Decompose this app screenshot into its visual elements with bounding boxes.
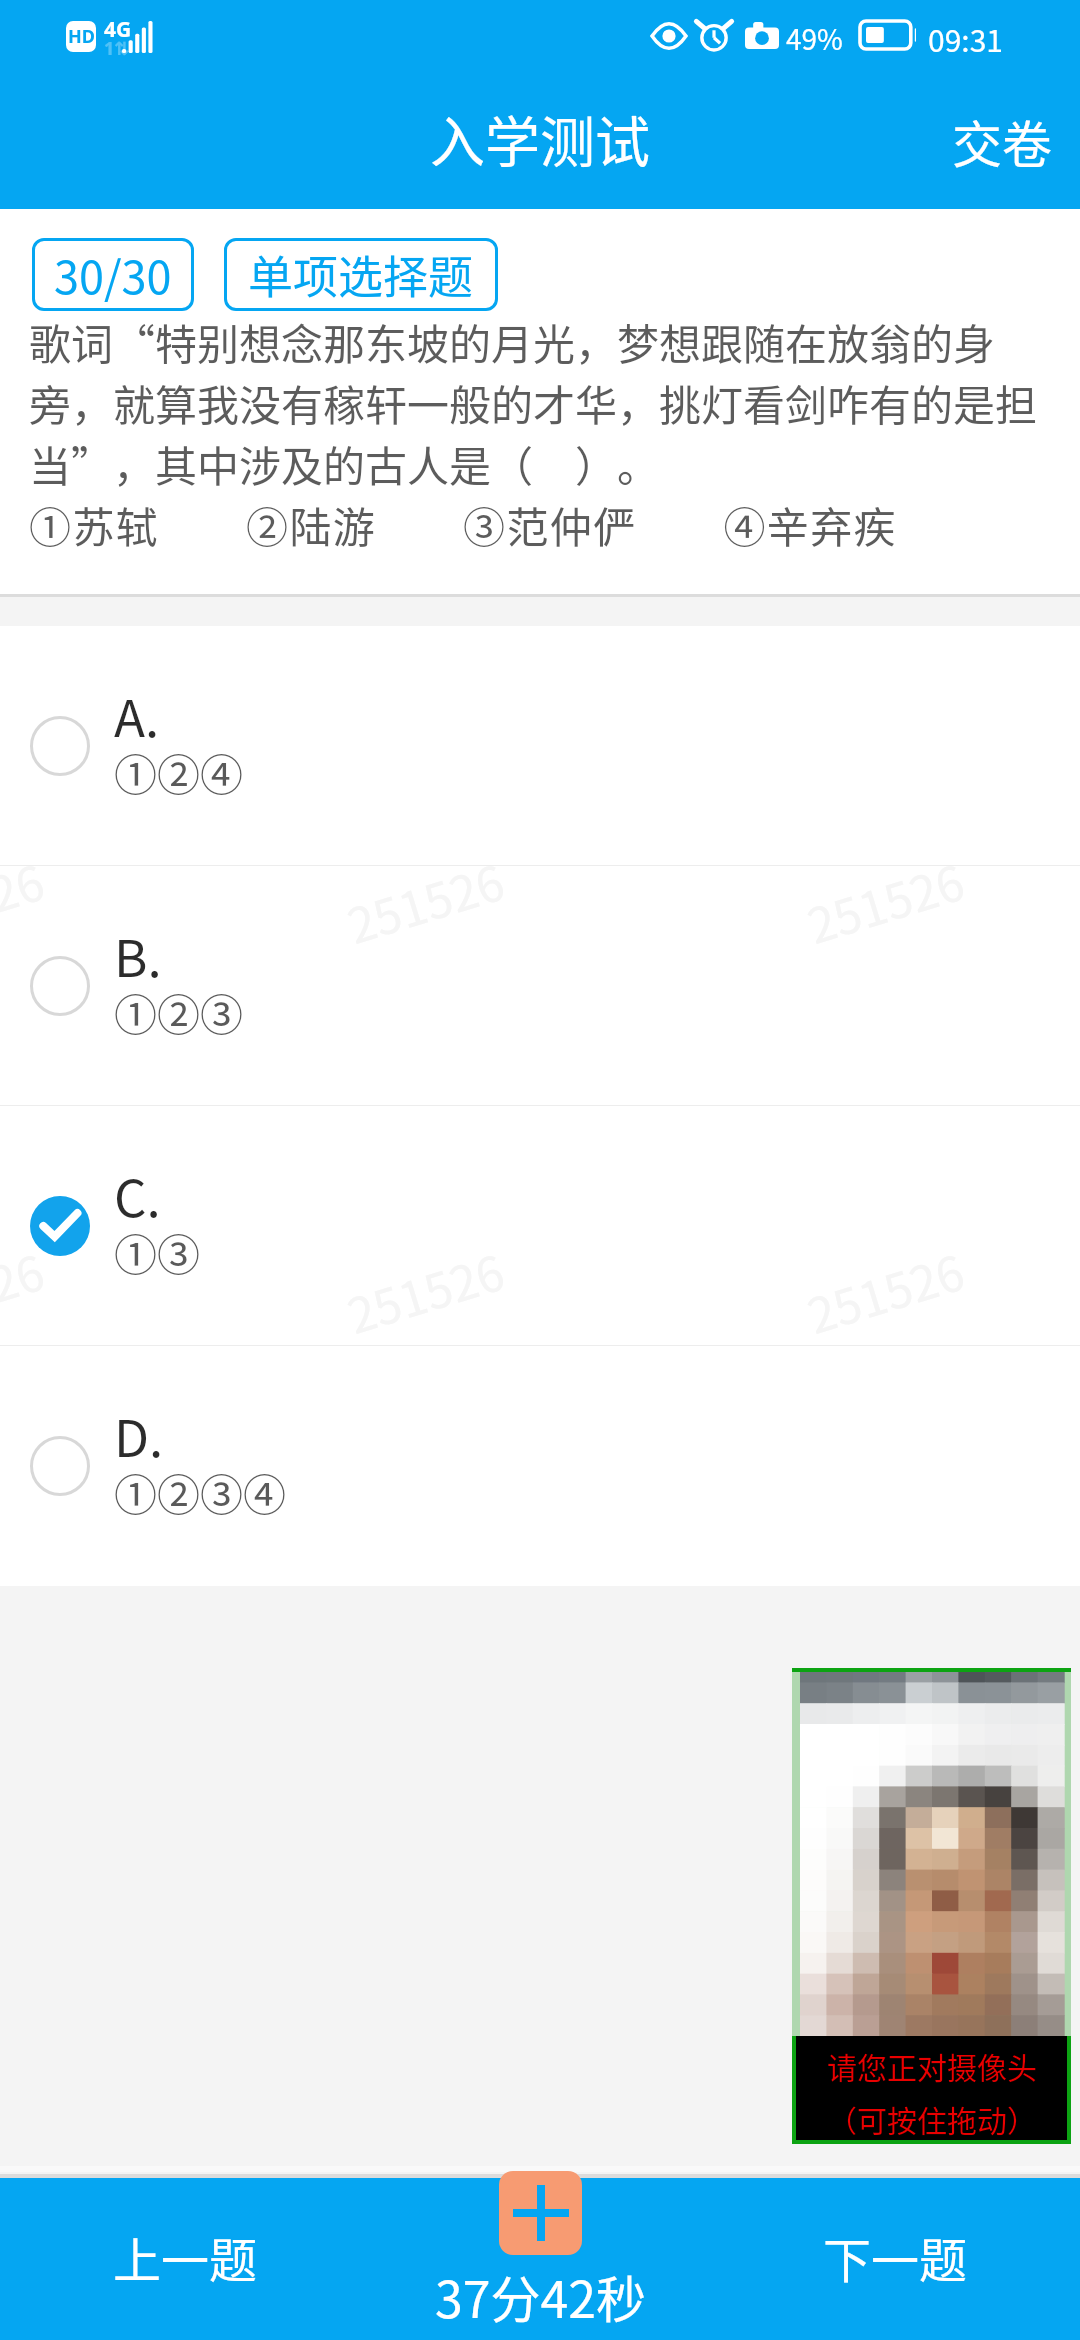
staticText: 251526	[338, 1234, 512, 1348]
staticText: 09:31	[928, 17, 1003, 60]
staticText: 下一题	[823, 2222, 968, 2292]
staticText: A.	[114, 678, 160, 752]
staticText: 请您正对摄像头	[827, 2044, 1037, 2087]
staticText: 49%	[786, 18, 843, 59]
staticText: 37分42秒	[435, 2260, 646, 2332]
button[interactable]: B.	[0, 866, 1080, 1105]
staticText: ①②③	[114, 981, 243, 1043]
staticText: C.	[114, 1158, 161, 1232]
staticText: 251526	[338, 844, 512, 958]
staticText: ①③	[114, 1221, 200, 1283]
button[interactable]: Add note	[499, 2171, 582, 2255]
button[interactable]: C.	[0, 1106, 1080, 1345]
staticText: 251526	[0, 1234, 52, 1348]
staticText: ①②③④	[114, 1461, 286, 1523]
staticText: 251526	[798, 844, 972, 958]
staticText: （可按住拖动）	[827, 2097, 1037, 2140]
button[interactable]: A.	[0, 626, 1080, 865]
button[interactable]: 上一题	[0, 2178, 370, 2340]
staticText: 251526	[798, 1234, 972, 1348]
button[interactable]: Camera preview, drag to move	[792, 1668, 1071, 2144]
button[interactable]: D.	[0, 1346, 1080, 1585]
button[interactable]: 交卷	[912, 78, 1080, 209]
staticText: 入学测试	[430, 98, 651, 178]
staticText: D.	[114, 1398, 164, 1472]
staticText: 4G	[104, 15, 132, 44]
staticText: HD	[68, 24, 95, 49]
staticText: 30/30	[54, 242, 172, 307]
button[interactable]: 下一题	[710, 2178, 1080, 2340]
staticText: 单项选择题	[248, 242, 474, 307]
staticText: 1⇅	[104, 36, 130, 61]
staticText: ①苏轼 ②陆游 ③范仲俨 ④辛弃疾	[29, 494, 898, 555]
staticText: ①②④	[114, 741, 243, 803]
staticText: 上一题	[113, 2222, 258, 2292]
staticText: 交卷	[952, 105, 1052, 177]
staticText: B.	[114, 918, 162, 992]
staticText: 251526	[0, 844, 52, 958]
staticText: 歌词“特别想念那东坡的月光，梦想跟随在放翁的身旁，就算我没有稼轩一般的才华，挑灯…	[29, 311, 1069, 494]
